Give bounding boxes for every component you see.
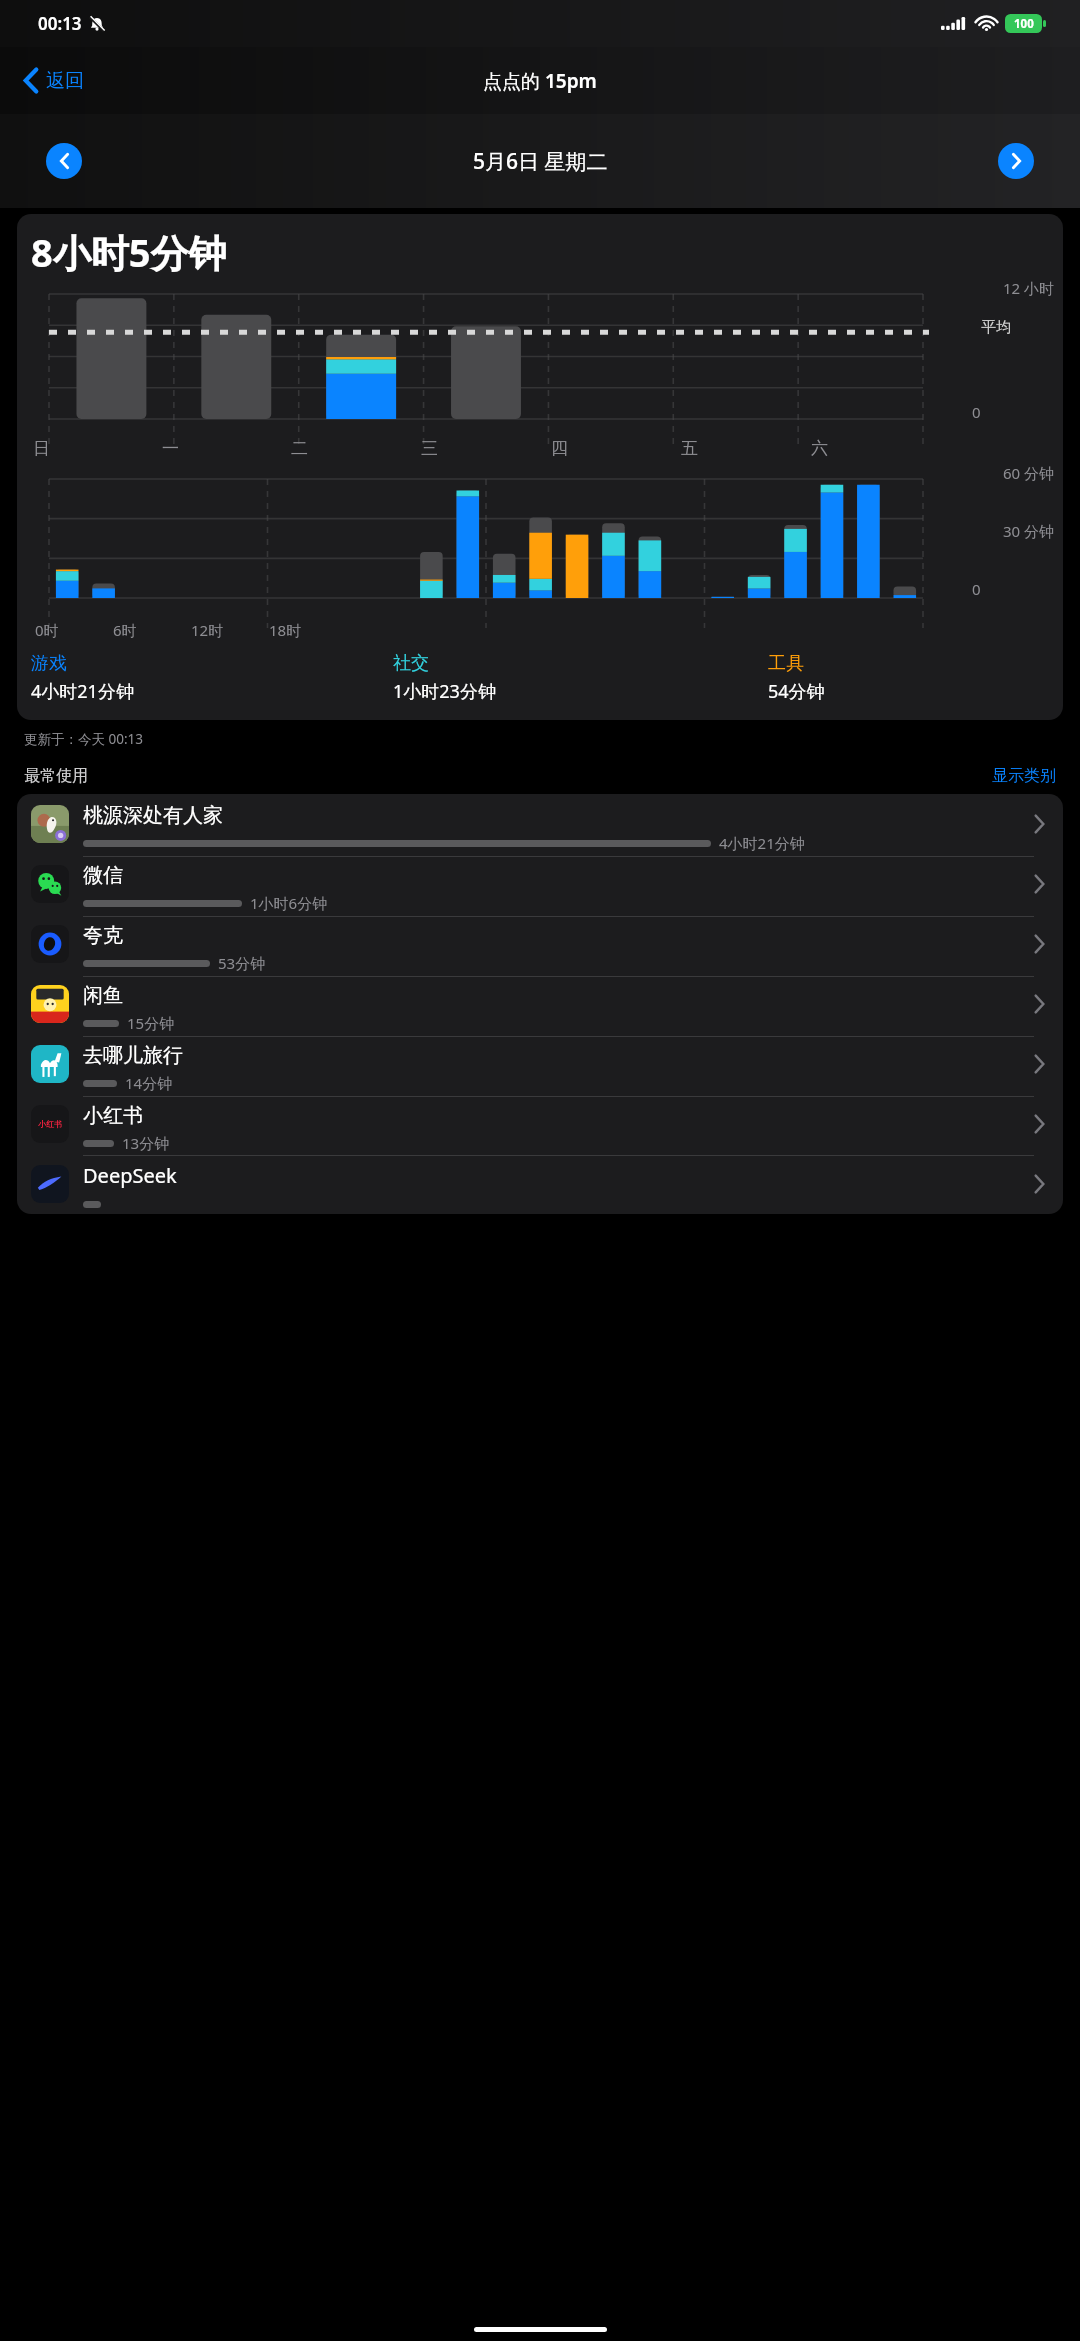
staticText: 60 分钟 [1003,463,1055,483]
staticText: 54分钟 [768,679,825,704]
button[interactable]: DeepSeek [17,1154,1063,1214]
button[interactable]: 去哪儿旅行 [17,1034,1063,1094]
staticText: 微信 [83,863,123,888]
staticText: 一 [162,438,179,459]
button[interactable]: 桃源深处有人家 [17,794,1063,854]
staticText: 三 [421,438,438,459]
staticText: 社交 [393,652,429,675]
staticText: 小红书 [38,1119,62,1129]
staticText: 二 [291,438,308,459]
other: Open 小红书 [1034,1114,1045,1134]
staticText: 15分钟 [127,1013,175,1033]
staticText: 更新于：今天 00:13 [24,730,144,748]
button[interactable]: Previous day [46,143,82,179]
staticText: 平均 [981,318,1011,337]
button[interactable]: 小红书 [17,1094,1063,1154]
staticText: 100 [1014,16,1034,32]
button[interactable]: 显示类别 [992,766,1056,786]
staticText: 点点的 15pm [483,68,597,94]
other: Open DeepSeek [1034,1174,1045,1194]
staticText: 53分钟 [218,953,266,973]
staticText: 工具 [768,652,804,675]
staticText: 最常使用 [24,766,88,786]
staticText: 0 [972,402,981,422]
button[interactable]: 游戏 [31,652,393,704]
staticText: 1小时23分钟 [393,679,496,704]
button[interactable]: Next day [998,143,1034,179]
staticText: 0 [972,579,981,599]
staticText: 00:13 [38,12,82,35]
staticText: 5月6日 星期二 [473,147,608,176]
staticText: DeepSeek [83,1162,177,1189]
staticText: 14分钟 [125,1073,173,1093]
staticText: 闲鱼 [83,983,123,1008]
button[interactable]: 微信 [17,854,1063,914]
other: Open 夸克 [1034,934,1045,954]
staticText: 13分钟 [122,1133,170,1153]
other: Open 桃源深处有人家 [1034,814,1045,834]
other: Open 去哪儿旅行 [1034,1054,1045,1074]
staticText: 四 [551,438,568,459]
staticText: 日 [33,438,50,459]
staticText: 小红书 [83,1103,143,1128]
other: Open 微信 [1034,874,1045,894]
staticText: 30 分钟 [1003,521,1055,541]
staticText: 游戏 [31,652,67,675]
staticText: 夸克 [83,923,123,948]
staticText: 五 [681,438,698,459]
other: Open 闲鱼 [1034,994,1045,1014]
staticText: 1小时6分钟 [250,893,328,913]
staticText: 六 [811,438,828,459]
button[interactable]: 返回 [18,62,90,99]
staticText: 12时 [191,620,224,640]
staticText: 返回 [46,69,84,93]
button[interactable]: 夸克 [17,914,1063,974]
staticText: 6时 [113,620,137,640]
button[interactable]: 闲鱼 [17,974,1063,1034]
button[interactable]: 社交 [393,652,768,704]
staticText: 4小时21分钟 [31,679,134,704]
staticText: 8小时5分钟 [31,226,227,278]
staticText: 桃源深处有人家 [83,803,223,828]
button[interactable]: 工具 [768,652,1055,704]
staticText: 去哪儿旅行 [83,1043,183,1068]
staticText: 18时 [269,620,302,640]
staticText: 12 小时 [1003,278,1055,298]
staticText: 显示类别 [992,766,1056,786]
staticText: 0时 [35,620,59,640]
staticText: 4小时21分钟 [719,833,805,853]
